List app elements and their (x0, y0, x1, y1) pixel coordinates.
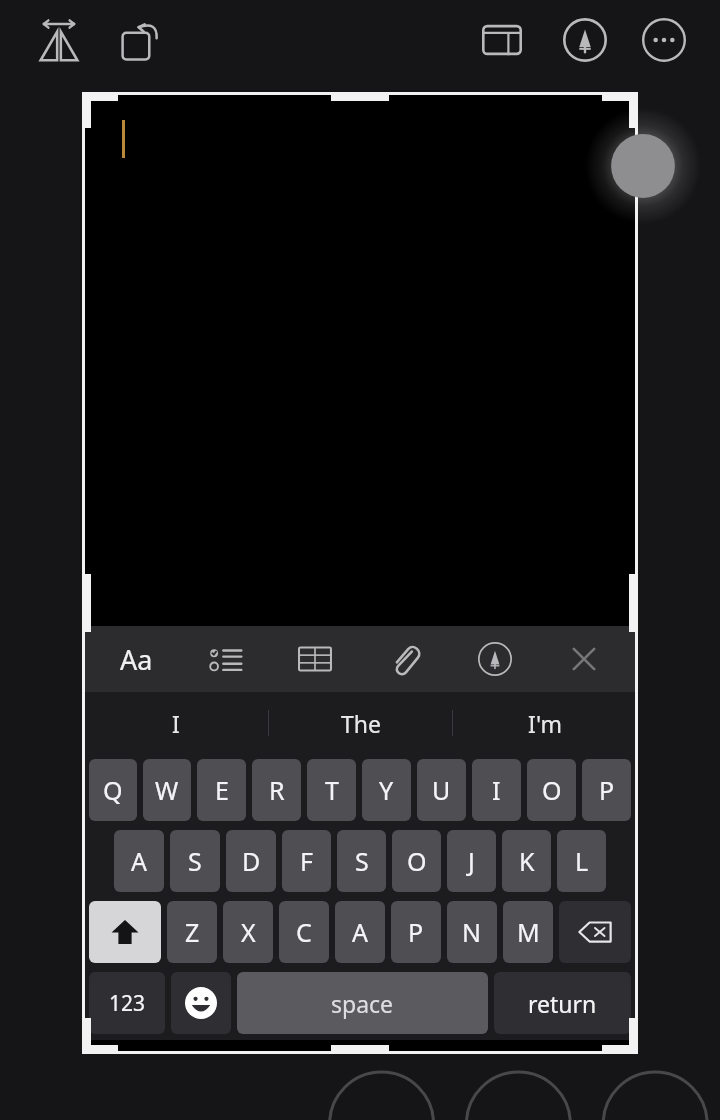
button[interactable]: return (494, 972, 631, 1034)
staticText: I'm (528, 708, 562, 739)
button[interactable]: Rotate (110, 10, 172, 72)
button[interactable]: space (237, 972, 488, 1034)
staticText: U (432, 773, 451, 807)
button[interactable]: I (472, 759, 521, 821)
button[interactable]: Layout (472, 10, 532, 70)
button[interactable]: 123 (89, 972, 165, 1034)
button[interactable]: X (223, 901, 273, 963)
button[interactable]: Backspace (559, 901, 631, 963)
button[interactable]: Table (277, 626, 353, 692)
staticText: L (575, 844, 589, 878)
staticText: S (355, 844, 369, 878)
button[interactable]: M (503, 901, 553, 963)
button[interactable]: O (392, 830, 441, 892)
button[interactable]: P (391, 901, 441, 963)
staticText: X (241, 915, 256, 949)
button[interactable]: U (417, 759, 466, 821)
button[interactable]: Markup (555, 10, 615, 70)
staticText: 123 (109, 989, 146, 1018)
staticText: O (542, 773, 562, 807)
staticText: F (300, 844, 313, 878)
button[interactable]: More options (634, 10, 694, 70)
button[interactable]: I'm (453, 692, 636, 754)
staticText: J (468, 844, 475, 878)
staticText: P (408, 915, 424, 949)
staticText: Y (379, 773, 394, 807)
staticText: P (599, 773, 615, 807)
button[interactable]: Y (362, 759, 411, 821)
staticText: space (331, 988, 394, 1019)
staticText: Z (185, 915, 200, 949)
button[interactable]: D (226, 830, 276, 892)
button[interactable]: Q (89, 759, 137, 821)
button[interactable]: E (197, 759, 246, 821)
staticText: A (352, 915, 368, 949)
button[interactable]: N (447, 901, 497, 963)
button[interactable]: S (170, 830, 220, 892)
staticText: O (407, 844, 427, 878)
button[interactable]: K (502, 830, 551, 892)
button[interactable]: T (307, 759, 356, 821)
button[interactable]: O (527, 759, 576, 821)
button[interactable]: R (252, 759, 301, 821)
button[interactable]: Markup (457, 626, 533, 692)
button[interactable]: A (114, 830, 164, 892)
staticText: T (325, 773, 339, 807)
button[interactable]: A (335, 901, 385, 963)
staticText: I (172, 708, 180, 739)
staticText: S (188, 844, 202, 878)
button[interactable]: Text format (98, 626, 174, 692)
button[interactable]: F (282, 830, 331, 892)
button[interactable]: Close keyboard (546, 626, 622, 692)
button[interactable]: Z (167, 901, 217, 963)
staticText: E (215, 773, 229, 807)
button[interactable] (84, 94, 636, 626)
staticText: M (517, 915, 540, 949)
staticText: I (492, 773, 501, 807)
staticText: N (462, 915, 482, 949)
button[interactable]: Shift (89, 901, 161, 963)
staticText: C (296, 915, 312, 949)
button[interactable]: P (582, 759, 631, 821)
button[interactable]: J (447, 830, 496, 892)
button[interactable]: Attach (367, 626, 443, 692)
button[interactable]: L (557, 830, 606, 892)
staticText: The (341, 708, 381, 739)
button[interactable]: I (84, 692, 268, 754)
button[interactable]: Flip (28, 10, 90, 72)
staticText: K (519, 844, 535, 878)
button[interactable]: C (279, 901, 329, 963)
staticText: return (528, 988, 597, 1019)
button[interactable]: S (337, 830, 386, 892)
staticText: D (242, 844, 261, 878)
staticText: R (269, 773, 285, 807)
button[interactable]: Resize handle (585, 108, 701, 224)
button[interactable]: Checklist (187, 626, 263, 692)
button[interactable]: The (269, 692, 452, 754)
staticText: Aa (120, 641, 153, 678)
button[interactable]: Emoji (171, 972, 231, 1034)
staticText: A (131, 844, 147, 878)
staticText: W (155, 773, 179, 807)
button[interactable]: W (143, 759, 191, 821)
staticText: Q (103, 773, 123, 807)
